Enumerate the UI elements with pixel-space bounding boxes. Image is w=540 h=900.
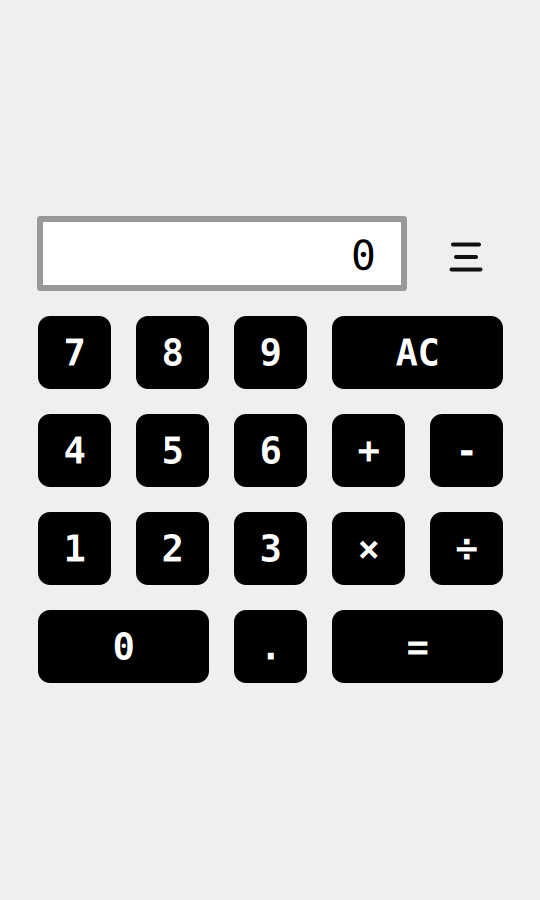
button[interactable]: ÷ <box>430 512 503 585</box>
staticText: ÷ <box>455 527 477 570</box>
button[interactable]: 6 <box>234 414 307 487</box>
staticText: - <box>455 429 477 472</box>
staticText: 8 <box>161 331 183 374</box>
button[interactable]: 2 <box>136 512 209 585</box>
staticText: 9 <box>259 331 281 374</box>
staticText: 4 <box>63 429 85 472</box>
button[interactable]: 5 <box>136 414 209 487</box>
button[interactable]: × <box>332 512 405 585</box>
button[interactable]: 9 <box>234 316 307 389</box>
button[interactable]: 0 <box>38 610 209 683</box>
staticText: 7 <box>63 331 85 374</box>
button[interactable]: 3 <box>234 512 307 585</box>
staticText: 5 <box>161 429 183 472</box>
staticText: × <box>357 527 379 570</box>
staticText: 0 <box>351 231 376 279</box>
staticText: = <box>406 625 428 668</box>
button[interactable]: + <box>332 414 405 487</box>
staticText: + <box>357 429 379 472</box>
staticText: 3 <box>259 527 281 570</box>
button[interactable]: Menu <box>444 235 488 279</box>
staticText: 2 <box>161 527 183 570</box>
staticText: 1 <box>63 527 85 570</box>
button[interactable]: 4 <box>38 414 111 487</box>
button[interactable]: 1 <box>38 512 111 585</box>
staticText: AC <box>395 331 439 374</box>
button[interactable]: AC <box>332 316 503 389</box>
button[interactable]: = <box>332 610 503 683</box>
button[interactable]: . <box>234 610 307 683</box>
staticText: . <box>259 625 281 668</box>
button[interactable]: - <box>430 414 503 487</box>
staticText: 6 <box>259 429 281 472</box>
button[interactable]: 7 <box>38 316 111 389</box>
button[interactable]: 8 <box>136 316 209 389</box>
staticText: 0 <box>112 625 134 668</box>
